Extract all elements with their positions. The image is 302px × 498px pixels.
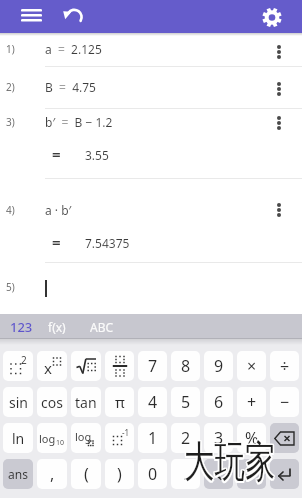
button[interactable]: ln (3, 423, 33, 453)
button[interactable]: 5 (171, 387, 200, 417)
button[interactable]: ans (3, 459, 33, 489)
staticText: f(x) (48, 319, 66, 335)
button[interactable]: f(x) (48, 314, 66, 339)
staticText: 9 (214, 355, 224, 377)
staticText: 3 (214, 427, 224, 449)
staticText: ) (117, 463, 122, 485)
button[interactable]: ÷ (270, 351, 299, 381)
button[interactable] (237, 459, 266, 489)
button[interactable]: ) (105, 459, 134, 489)
staticText: 2 (21, 353, 27, 367)
staticText: ( (84, 463, 89, 485)
staticText: 1 (148, 427, 158, 449)
button[interactable] (261, 7, 283, 29)
staticText: 2) (6, 80, 15, 94)
staticText: tan (75, 393, 97, 412)
button[interactable]: × (237, 351, 266, 381)
button[interactable]: x (37, 351, 67, 381)
staticText: 2 (181, 427, 191, 449)
staticText: 7.54375 (85, 235, 130, 251)
button[interactable] (271, 203, 287, 217)
button[interactable] (270, 459, 299, 489)
staticText: 7 (148, 355, 158, 377)
button[interactable]: cos (37, 387, 67, 417)
staticText: , (50, 463, 55, 485)
staticText: a · b′ (45, 202, 72, 218)
button[interactable]: + (237, 387, 266, 417)
staticText: ABC (90, 319, 114, 335)
staticText: b′ = B − 1.2 (45, 114, 113, 130)
staticText: 4 (148, 391, 158, 413)
button[interactable]: log (37, 423, 67, 453)
button[interactable]: 4 (138, 387, 167, 417)
button[interactable]: − (270, 387, 299, 417)
staticText: B = 4.75 (45, 79, 96, 95)
staticText: = (52, 144, 61, 164)
button[interactable]: tan (71, 387, 101, 417)
staticText: 3.55 (85, 147, 109, 163)
staticText: cos (41, 393, 63, 412)
button[interactable] (105, 351, 134, 381)
staticText: + (247, 391, 257, 413)
staticText: ÷ (280, 355, 290, 377)
button[interactable]: π (105, 387, 134, 417)
staticText: ans (8, 466, 28, 482)
button[interactable]: 2 (171, 423, 200, 453)
staticText: − (280, 391, 290, 413)
staticText: 6 (214, 391, 224, 413)
button[interactable]: 2 (3, 351, 33, 381)
button[interactable] (271, 82, 287, 96)
button[interactable]: ABC (90, 314, 114, 339)
button[interactable]: 1 (138, 423, 167, 453)
button[interactable] (71, 351, 101, 381)
staticText: . (183, 463, 188, 485)
button[interactable]: 3 (204, 423, 233, 453)
staticText: 5) (6, 280, 15, 294)
staticText: × (247, 355, 257, 377)
button[interactable]: , (37, 459, 67, 489)
staticText: 5 (181, 391, 191, 413)
staticText: 123 (10, 318, 33, 336)
button[interactable]: 123 (10, 314, 33, 339)
button[interactable]: 0 (138, 459, 167, 489)
button[interactable]: % (237, 423, 266, 453)
button[interactable]: -1 (105, 423, 134, 453)
staticText: x (44, 358, 52, 378)
staticText: 0 (148, 463, 158, 485)
button[interactable]: 6 (204, 387, 233, 417)
button[interactable] (271, 116, 287, 130)
button[interactable]: 9 (204, 351, 233, 381)
staticText: ln (12, 429, 25, 448)
button[interactable]: . (171, 459, 200, 489)
button[interactable]: 8 (171, 351, 200, 381)
staticText: a = 2.125 (45, 41, 102, 57)
button[interactable] (204, 459, 233, 489)
button[interactable]: 7 (138, 351, 167, 381)
button[interactable] (61, 8, 85, 26)
staticText: % (245, 427, 259, 449)
button[interactable] (21, 9, 43, 23)
staticText: log (39, 431, 56, 446)
staticText: 1) (6, 42, 15, 56)
button[interactable]: sin (3, 387, 33, 417)
staticText: 3) (6, 115, 15, 129)
staticText: sin (9, 393, 28, 412)
button[interactable] (271, 45, 287, 59)
staticText: -1 (122, 427, 130, 438)
staticText: log (75, 429, 92, 444)
staticText: 4) (6, 203, 15, 217)
button[interactable]: log (71, 423, 101, 453)
button[interactable] (270, 423, 299, 453)
staticText: 10 (56, 438, 65, 448)
button[interactable]: ( (71, 459, 101, 489)
staticText: = (52, 232, 61, 252)
staticText: 8 (181, 355, 191, 377)
staticText: π (115, 392, 125, 412)
